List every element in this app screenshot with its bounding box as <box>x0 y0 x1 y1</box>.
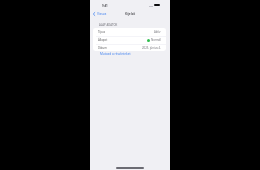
staticText: Normál <box>151 38 161 42</box>
staticText: Típus <box>98 30 106 34</box>
button[interactable]: Dátum <box>93 44 166 51</box>
button[interactable]: Mutasd a részleteket <box>100 52 131 56</box>
staticText: 2025. június 4. <box>142 46 161 50</box>
staticText: Aktív <box>154 30 161 34</box>
staticText: 9:41 <box>102 4 108 8</box>
button[interactable]: Back <box>92 10 110 18</box>
staticText: Vissza <box>97 12 107 16</box>
button[interactable]: Állapot <box>93 36 166 44</box>
staticText: Kijelző <box>125 12 136 16</box>
staticText: Dátum <box>98 46 107 50</box>
staticText: Állapot <box>98 38 108 42</box>
button[interactable]: Típus <box>93 28 166 36</box>
other: Back <box>93 12 95 16</box>
staticText: ALAP ADATOK <box>99 23 118 27</box>
